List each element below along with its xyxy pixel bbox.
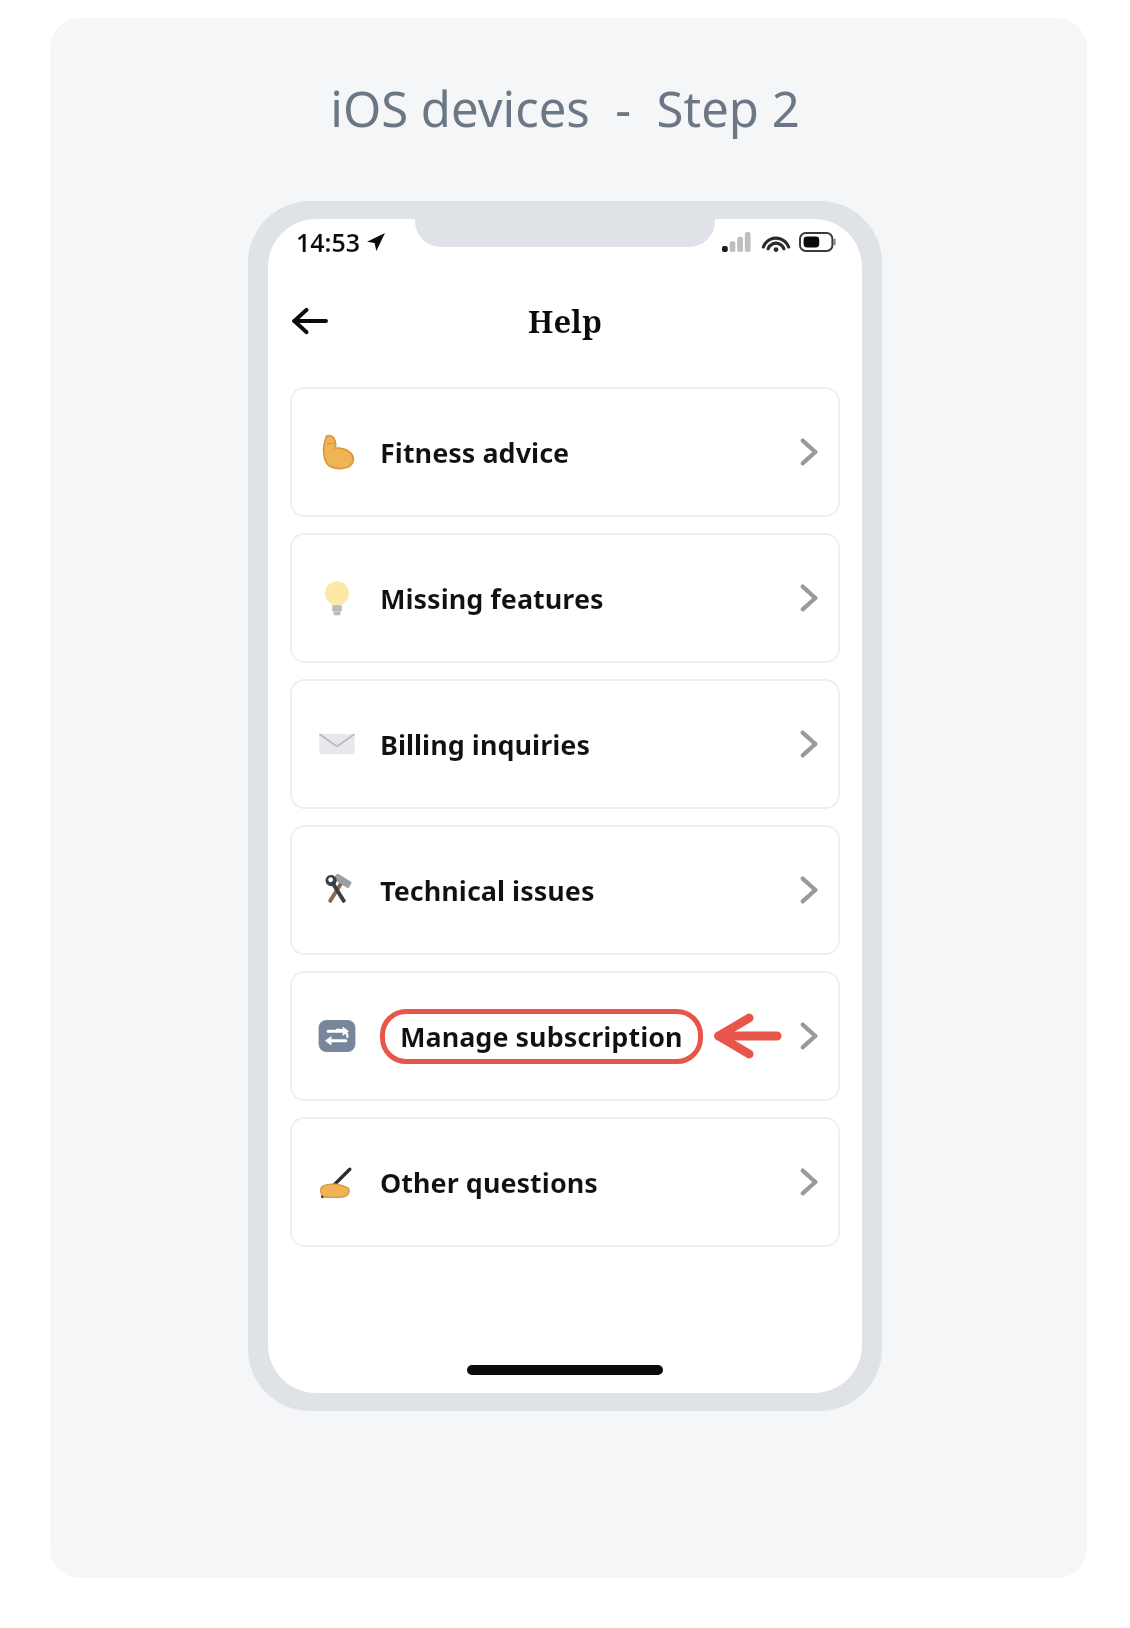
staticText: iOS devices - Step 2: [330, 75, 800, 142]
button[interactable]: Technical issues: [290, 825, 840, 955]
staticText: Help: [528, 300, 603, 342]
staticText: Missing features: [380, 580, 604, 617]
staticText: Billing inquiries: [380, 726, 590, 763]
staticText: Technical issues: [380, 872, 595, 909]
button[interactable]: Manage subscription: [290, 971, 840, 1101]
button[interactable]: Billing inquiries: [290, 679, 840, 809]
button[interactable]: Missing features: [290, 533, 840, 663]
button[interactable]: Back: [282, 293, 338, 349]
staticText: Fitness advice: [380, 434, 570, 471]
staticText: Manage subscription: [400, 1018, 683, 1055]
staticText: 14:53: [296, 225, 361, 259]
button[interactable]: Fitness advice: [290, 387, 840, 517]
staticText: Other questions: [380, 1164, 598, 1201]
button[interactable]: Other questions: [290, 1117, 840, 1247]
